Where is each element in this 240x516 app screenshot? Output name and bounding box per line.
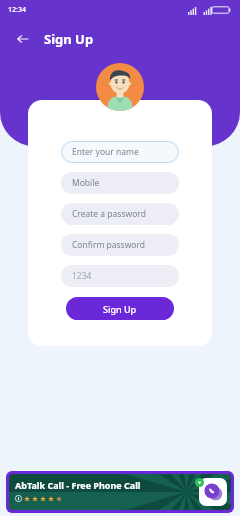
staticText: AbTalk Call - Free Phone Call: [15, 479, 141, 491]
staticText: Enter your name: [72, 146, 139, 158]
staticText: Sign Up: [44, 30, 94, 48]
staticText: Sign Up: [103, 303, 137, 315]
button[interactable]: Confirm password: [61, 234, 179, 256]
button[interactable]: Back: [10, 26, 36, 52]
staticText: Mobile: [72, 177, 100, 189]
button[interactable]: Profile photo: [96, 63, 144, 111]
staticText: Create a password: [72, 208, 146, 220]
button[interactable]: AbTalk Call - Free Phone Call: [6, 471, 234, 513]
button[interactable]: Enter your name: [61, 141, 179, 163]
button[interactable]: Mobile: [61, 172, 179, 194]
button[interactable]: Sign Up: [66, 297, 174, 320]
button[interactable]: 1234: [61, 265, 179, 287]
staticText: 12:34: [8, 5, 26, 15]
button[interactable]: Create a password: [61, 203, 179, 225]
staticText: 1234: [72, 270, 92, 282]
staticText: Confirm password: [72, 239, 146, 251]
